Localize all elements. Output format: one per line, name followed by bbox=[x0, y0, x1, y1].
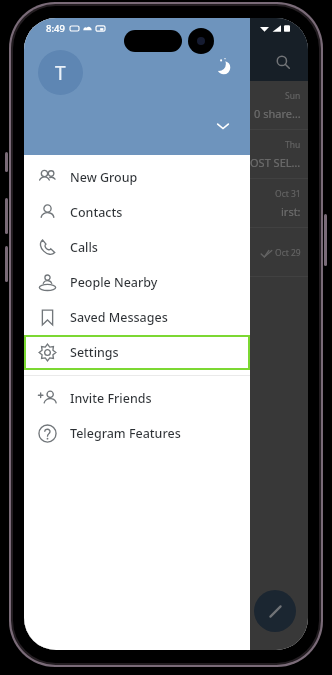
staticText: Thu bbox=[285, 139, 301, 151]
button[interactable]: New Group bbox=[24, 160, 250, 195]
button[interactable]: Thu bbox=[24, 130, 308, 179]
staticText: New Group bbox=[70, 169, 138, 186]
staticText: Settings bbox=[70, 344, 119, 361]
button[interactable]: Contacts bbox=[24, 195, 250, 230]
button[interactable]: T bbox=[24, 18, 250, 155]
button[interactable]: Oct 29 bbox=[24, 228, 308, 277]
button[interactable]: Telegram Features bbox=[24, 416, 250, 451]
staticText: Oct 29 bbox=[275, 247, 301, 259]
button[interactable]: Settings bbox=[24, 335, 250, 370]
button[interactable]: New message bbox=[254, 590, 296, 632]
staticText: People Nearby bbox=[70, 274, 158, 291]
button[interactable]: Invite Friends bbox=[24, 381, 250, 416]
button[interactable]: Toggle night mode bbox=[210, 52, 238, 80]
staticText: Calls bbox=[70, 239, 98, 256]
staticText: 8:49 bbox=[46, 22, 65, 35]
button[interactable]: Search bbox=[269, 48, 297, 76]
button[interactable]: People Nearby bbox=[24, 265, 250, 300]
staticText: Invite Friends bbox=[70, 390, 152, 407]
staticText: Oct 31 bbox=[275, 188, 301, 200]
button[interactable]: Oct 31 bbox=[24, 179, 308, 228]
staticText: OST SEL… bbox=[250, 155, 301, 170]
button[interactable]: Calls bbox=[24, 230, 250, 265]
button[interactable]: Expand account list bbox=[208, 111, 238, 141]
staticText: Telegram Features bbox=[70, 425, 181, 442]
button[interactable]: Saved Messages bbox=[24, 300, 250, 335]
staticText: 0 share… bbox=[254, 106, 301, 121]
staticText: irst: bbox=[281, 204, 301, 219]
staticText: T bbox=[55, 60, 66, 86]
button[interactable]: Sun bbox=[24, 81, 308, 130]
staticText: Saved Messages bbox=[70, 309, 168, 326]
staticText: Sun bbox=[285, 90, 301, 102]
staticText: Contacts bbox=[70, 204, 123, 221]
